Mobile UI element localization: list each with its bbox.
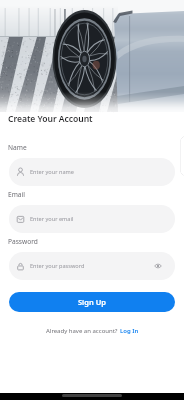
staticText: Sign Up: [78, 297, 106, 307]
staticText: Already have an account?: [46, 327, 120, 335]
staticText: Create Your Account: [8, 113, 93, 125]
button[interactable]: Enter your email: [9, 205, 175, 233]
button[interactable]: Show password: [154, 262, 162, 270]
button[interactable]: Sign Up: [9, 292, 175, 312]
staticText: Password: [8, 237, 38, 246]
staticText: Email: [8, 190, 25, 199]
button[interactable]: Enter your password: [9, 252, 175, 280]
staticText: Enter your name: [30, 168, 74, 176]
button[interactable]: Enter your name: [9, 158, 175, 186]
button[interactable]: Log In: [120, 327, 139, 335]
staticText: Enter your email: [30, 215, 74, 223]
staticText: Enter your password: [30, 262, 85, 270]
staticText: Name: [8, 143, 27, 152]
